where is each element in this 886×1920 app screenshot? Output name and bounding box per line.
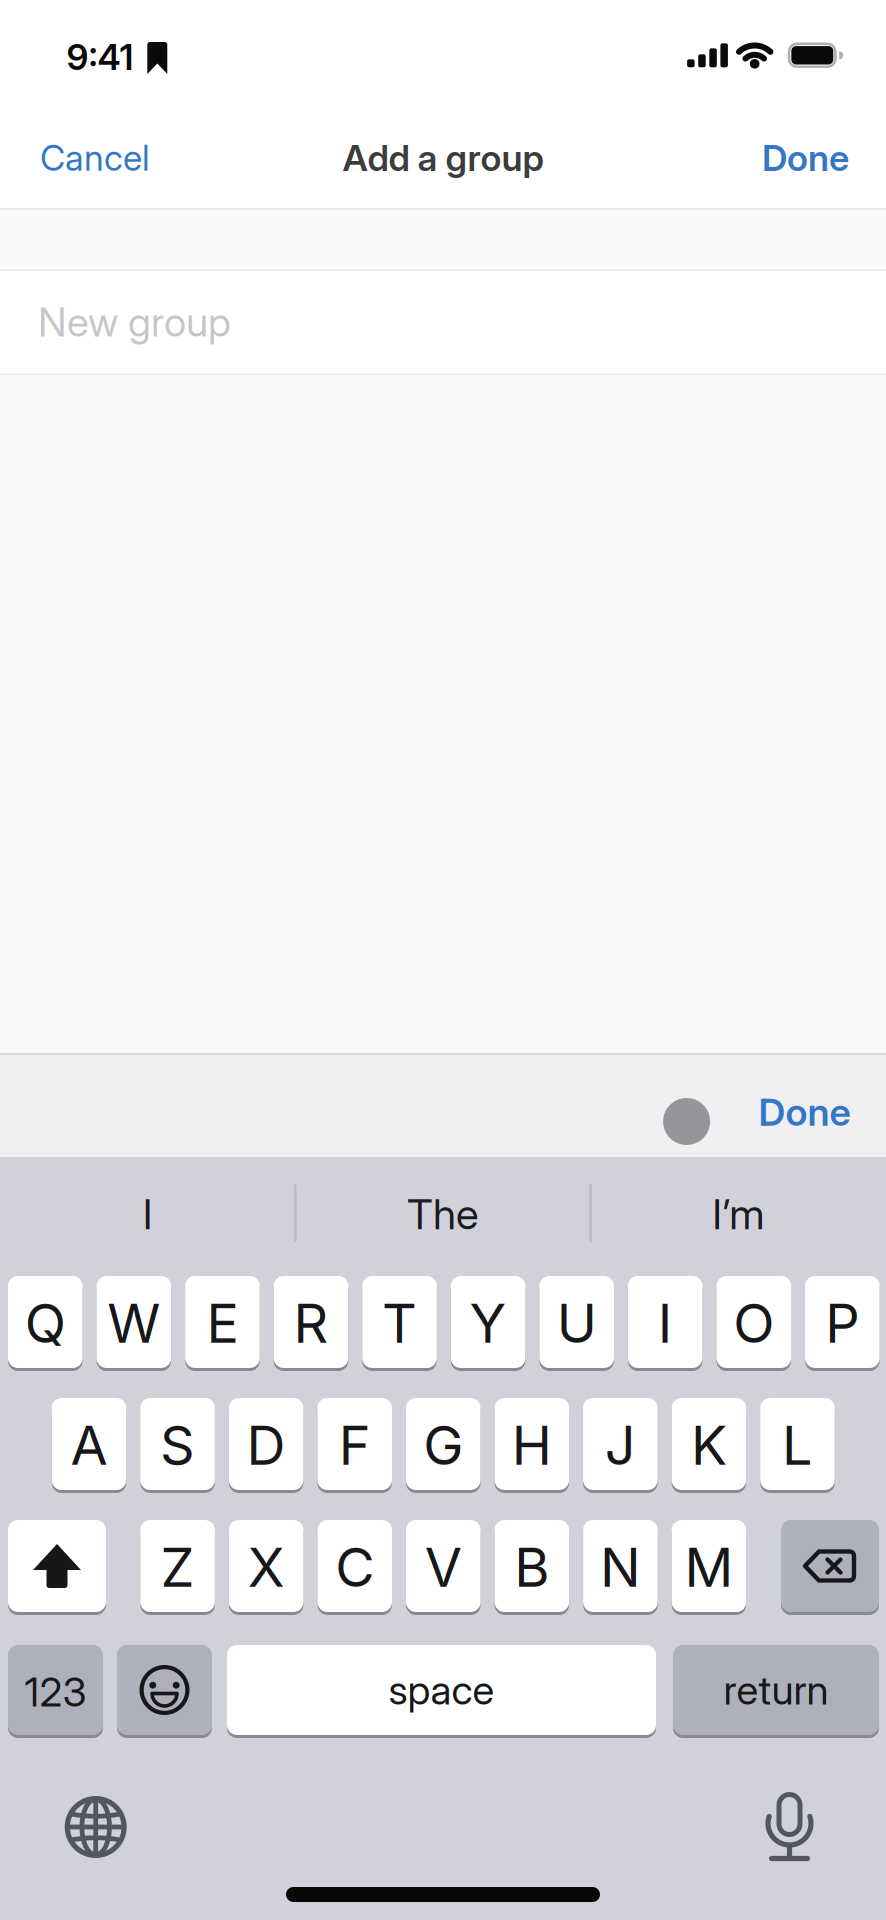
staticText: P (825, 1290, 859, 1356)
button[interactable]: C (317, 1520, 392, 1612)
button[interactable]: O (716, 1276, 791, 1368)
staticText: W (107, 1290, 160, 1356)
button[interactable]: Q (8, 1276, 83, 1368)
button[interactable]: N (583, 1520, 658, 1612)
staticText: R (293, 1290, 328, 1356)
staticText: I’m (712, 1189, 764, 1239)
staticText: Y (470, 1290, 507, 1356)
staticText: B (514, 1534, 549, 1600)
button[interactable]: P (805, 1276, 880, 1368)
button[interactable]: M (672, 1520, 746, 1612)
staticText: F (339, 1412, 371, 1478)
staticText: Add a group (342, 136, 543, 180)
button[interactable]: A (52, 1398, 126, 1490)
button[interactable]: I’m (598, 1164, 878, 1264)
staticText: L (782, 1412, 813, 1478)
button[interactable]: Y (451, 1276, 525, 1368)
staticText: T (382, 1290, 417, 1356)
staticText: A (70, 1412, 107, 1478)
staticText: K (691, 1412, 727, 1478)
button[interactable]: R (274, 1276, 348, 1368)
button[interactable]: Emoji (117, 1645, 212, 1735)
button[interactable]: Z (140, 1520, 215, 1612)
staticText: M (684, 1534, 733, 1600)
button[interactable]: return (673, 1645, 879, 1735)
button[interactable]: B (494, 1520, 569, 1612)
button[interactable]: 123 (8, 1645, 103, 1735)
staticText: New group (38, 298, 231, 346)
button[interactable]: S (140, 1398, 215, 1490)
button[interactable]: I (628, 1276, 702, 1368)
button[interactable]: Delete (781, 1520, 879, 1612)
staticText: E (206, 1290, 238, 1356)
staticText: space (388, 1666, 494, 1714)
staticText: X (248, 1534, 285, 1600)
button[interactable]: Cancel (40, 137, 150, 179)
staticText: D (247, 1412, 286, 1478)
button[interactable]: New group (0, 271, 886, 373)
button[interactable]: D (229, 1398, 303, 1490)
button[interactable]: E (185, 1276, 260, 1368)
button[interactable]: K (672, 1398, 746, 1490)
button[interactable]: F (317, 1398, 392, 1490)
staticText: 9:41 (66, 35, 133, 78)
button[interactable]: I (8, 1164, 288, 1264)
staticText: O (733, 1290, 774, 1356)
button[interactable]: The (303, 1164, 583, 1264)
staticText: Z (161, 1534, 195, 1600)
staticText: S (160, 1412, 195, 1478)
button[interactable]: Group color (663, 1098, 710, 1145)
staticText: H (512, 1412, 552, 1478)
staticText: I (143, 1189, 153, 1239)
button[interactable]: L (760, 1398, 835, 1490)
staticText: Done (762, 136, 849, 180)
button[interactable]: V (406, 1520, 481, 1612)
button[interactable]: X (229, 1520, 303, 1612)
button[interactable]: Next keyboard (51, 1782, 141, 1872)
staticText: return (723, 1666, 828, 1714)
button[interactable]: W (97, 1276, 171, 1368)
staticText: Cancel (40, 137, 150, 179)
button[interactable]: Dictate (744, 1783, 834, 1873)
button[interactable]: U (539, 1276, 614, 1368)
button[interactable]: Done (758, 1089, 850, 1135)
staticText: N (600, 1534, 641, 1600)
button[interactable]: Done (762, 136, 849, 180)
staticText: U (557, 1290, 597, 1356)
staticText: The (407, 1189, 479, 1239)
staticText: Done (758, 1089, 850, 1135)
button[interactable]: space (227, 1645, 656, 1735)
staticText: C (335, 1534, 374, 1600)
button[interactable]: J (583, 1398, 658, 1490)
staticText: Q (25, 1290, 66, 1356)
staticText: G (423, 1412, 463, 1478)
staticText: J (605, 1412, 636, 1478)
staticText: V (425, 1534, 462, 1600)
button[interactable]: Shift (8, 1520, 106, 1612)
staticText: 123 (24, 1668, 86, 1716)
button[interactable]: H (494, 1398, 569, 1490)
button[interactable]: T (362, 1276, 437, 1368)
button[interactable]: G (406, 1398, 480, 1490)
staticText: I (658, 1290, 673, 1356)
